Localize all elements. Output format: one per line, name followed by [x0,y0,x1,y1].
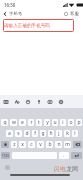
staticText: r [30,119,33,126]
staticText: q [3,119,7,126]
button[interactable]: e [19,119,26,126]
button[interactable]: Emoji [5,165,10,170]
staticText: c [30,141,33,148]
button[interactable]: q [1,119,8,126]
staticText: m [65,141,70,148]
button[interactable]: Font [11,95,22,108]
staticText: o [69,119,73,126]
button[interactable]: 。 [59,152,69,159]
staticText: i [62,119,64,126]
button[interactable]: d [24,130,30,137]
button[interactable]: Voice [33,95,44,108]
button[interactable]: Emoji [22,95,33,108]
button[interactable]: ?123 [1,152,10,159]
staticText: e [21,119,24,126]
staticText: h [49,130,53,137]
button[interactable]: z [11,141,17,148]
staticText: k [66,130,69,137]
button[interactable]: m [64,141,71,148]
button[interactable]: Keyboard [0,95,11,108]
staticText: g [41,130,45,137]
staticText: j [58,130,60,137]
staticText: v [39,141,42,148]
button[interactable]: Clipboard [44,95,55,108]
button[interactable] [1,141,9,148]
button[interactable]: i [60,119,66,126]
staticText: 请输入正确的手机号码 [4,23,50,29]
button[interactable]: g [40,130,46,137]
staticText: z [13,141,16,148]
button[interactable]: Settings [55,95,66,108]
button[interactable]: y [44,119,50,126]
staticText: a [8,130,11,137]
button[interactable]: t [36,119,42,126]
staticText: t [38,119,40,126]
button[interactable]: 客服 [64,11,83,17]
staticText: d [25,130,29,137]
button[interactable]: n [55,141,62,148]
button[interactable]: w [10,119,17,126]
staticText: u [53,119,57,126]
button[interactable] [71,152,82,159]
button[interactable]: p [76,119,82,126]
button[interactable]: c [28,141,35,148]
button[interactable]: h [48,130,54,137]
staticText: ?123 [2,154,9,158]
button[interactable]: j [56,130,62,137]
staticText: 手机号 [9,11,23,17]
staticText: 闪电 [54,165,66,173]
button[interactable]: s [15,130,22,137]
staticText: n [57,141,61,148]
staticText: x [21,141,24,148]
button[interactable]: k [64,130,70,137]
button[interactable]: u [52,119,58,126]
staticText: b [48,141,52,148]
staticText: 。 [62,153,67,159]
button[interactable]: b [46,141,53,148]
button[interactable]: f [32,130,38,137]
button[interactable]: x [19,141,26,148]
button[interactable] [73,141,82,148]
button[interactable]: r [28,119,34,126]
button[interactable]: o [68,119,74,126]
staticText: 客服 [70,11,79,17]
staticText: y [46,119,49,126]
staticText: l [74,130,76,137]
staticText: f [34,130,36,137]
button[interactable]: 请输入正确的手机号码 [3,19,74,32]
button[interactable]: Back [0,9,9,19]
staticText: w [12,119,16,126]
staticText: s [17,130,20,137]
staticText: 龙网 [66,165,78,173]
staticText: p [77,119,81,126]
button[interactable]: l [72,130,78,137]
button[interactable]: a [6,130,13,137]
button[interactable]: v [37,141,44,148]
staticText: 16:50 [4,2,16,8]
